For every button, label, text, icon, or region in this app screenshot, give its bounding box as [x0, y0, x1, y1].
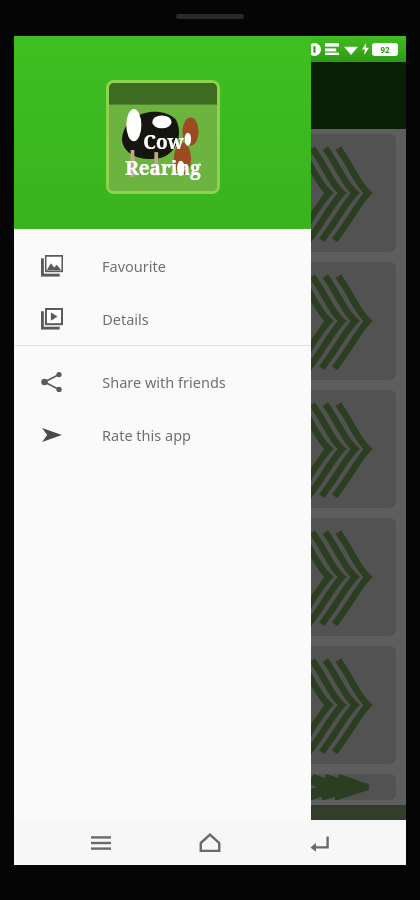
- staticText: Favourite: [102, 256, 166, 276]
- staticText: Cow: [143, 129, 184, 155]
- button[interactable]: Home: [187, 820, 233, 865]
- button[interactable]: Back: [297, 820, 343, 865]
- button[interactable]: Recent apps: [78, 820, 124, 865]
- button[interactable]: Favourite: [14, 239, 311, 292]
- button[interactable]: Rate this app: [14, 408, 311, 461]
- staticText: 92: [380, 44, 390, 55]
- button[interactable]: Share with friends: [14, 355, 311, 408]
- staticText: Details: [102, 309, 149, 329]
- staticText: Rearing: [125, 155, 201, 181]
- staticText: Rate this app: [102, 425, 191, 445]
- staticText: Share with friends: [102, 372, 226, 392]
- button[interactable]: Details: [14, 292, 311, 345]
